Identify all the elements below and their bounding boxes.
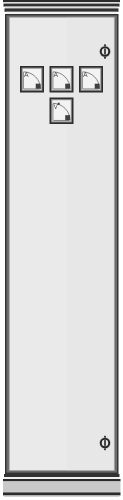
other: Electrical switchgear cabinet panel: [0, 0, 123, 500]
button[interactable]: [0, 0, 123, 500]
